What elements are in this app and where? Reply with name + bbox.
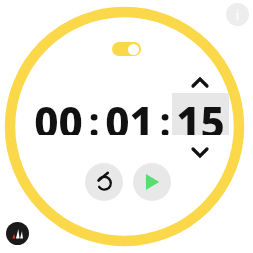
button[interactable]: Decrease seconds [186, 138, 214, 166]
staticText: 01 [105, 93, 154, 135]
button[interactable]: App badge [6, 222, 29, 245]
button[interactable]: Increase seconds [186, 68, 214, 96]
button[interactable]: Reset timer [85, 163, 123, 201]
staticText: : [159, 93, 171, 135]
staticText: 00 [34, 93, 83, 135]
button[interactable]: Toggle timer mode [112, 42, 141, 56]
staticText: 15 [176, 93, 225, 135]
button[interactable]: 15 [172, 93, 229, 135]
button[interactable]: Info [226, 3, 249, 26]
staticText: : [88, 93, 100, 135]
button[interactable]: Start timer [133, 163, 171, 201]
